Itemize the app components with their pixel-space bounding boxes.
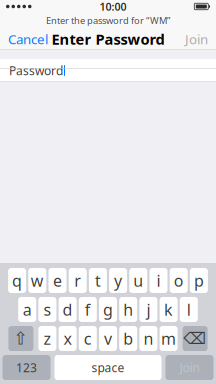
- staticText: space: [91, 359, 124, 375]
- button[interactable]: v: [99, 326, 117, 351]
- staticText: Enter the password for “WM”: [46, 14, 170, 27]
- button[interactable]: w: [28, 268, 46, 293]
- button[interactable]: f: [79, 297, 97, 322]
- button[interactable]: s: [38, 297, 56, 322]
- button[interactable]: Password: [0, 59, 216, 82]
- button[interactable]: i: [149, 268, 167, 293]
- staticText: 10:00: [99, 0, 126, 14]
- staticText: ⇧: [13, 329, 28, 348]
- button[interactable]: o: [170, 268, 188, 293]
- button[interactable]: Join: [165, 355, 213, 380]
- button[interactable]: Cancel: [0, 28, 56, 50]
- button[interactable]: b: [119, 326, 137, 351]
- staticText: Join: [185, 30, 208, 48]
- staticText: Password: [9, 62, 63, 78]
- button[interactable]: e: [48, 268, 66, 293]
- button[interactable]: x: [59, 326, 77, 351]
- staticText: q: [12, 270, 22, 291]
- staticText: Cancel: [8, 30, 48, 48]
- staticText: m: [161, 328, 176, 349]
- staticText: u: [133, 270, 143, 291]
- button[interactable]: Shift: [8, 326, 33, 351]
- staticText: a: [23, 299, 32, 320]
- button[interactable]: r: [69, 268, 87, 293]
- staticText: v: [104, 328, 112, 349]
- button[interactable]: y: [109, 268, 127, 293]
- staticText: t: [95, 270, 101, 291]
- button[interactable]: m: [160, 326, 178, 351]
- button[interactable]: t: [89, 268, 107, 293]
- staticText: f: [85, 299, 91, 320]
- staticText: r: [74, 270, 81, 291]
- staticText: z: [43, 328, 51, 349]
- button[interactable]: l: [180, 297, 198, 322]
- staticText: b: [123, 328, 133, 349]
- button[interactable]: g: [99, 297, 117, 322]
- staticText: ⌫: [184, 329, 207, 348]
- staticText: j: [146, 299, 150, 320]
- staticText: s: [43, 299, 51, 320]
- button[interactable]: Delete: [183, 326, 208, 351]
- staticText: n: [143, 328, 153, 349]
- button[interactable]: c: [79, 326, 97, 351]
- button[interactable]: u: [129, 268, 147, 293]
- button[interactable]: a: [18, 297, 36, 322]
- staticText: w: [31, 270, 44, 291]
- button[interactable]: 123: [2, 355, 50, 380]
- button[interactable]: q: [8, 268, 26, 293]
- staticText: e: [53, 270, 62, 291]
- staticText: y: [114, 270, 122, 291]
- button[interactable]: d: [59, 297, 77, 322]
- staticText: l: [187, 299, 191, 320]
- staticText: 123: [16, 359, 37, 375]
- button[interactable]: p: [190, 268, 208, 293]
- staticText: p: [194, 270, 204, 291]
- button[interactable]: h: [119, 297, 137, 322]
- button[interactable]: space: [54, 355, 161, 380]
- staticText: d: [63, 299, 73, 320]
- staticText: c: [84, 328, 92, 349]
- staticText: k: [164, 299, 173, 320]
- staticText: o: [174, 270, 184, 291]
- staticText: h: [123, 299, 133, 320]
- button[interactable]: Join: [177, 28, 216, 50]
- staticText: x: [64, 328, 72, 349]
- button[interactable]: n: [139, 326, 157, 351]
- button[interactable]: z: [38, 326, 56, 351]
- staticText: Enter Password: [51, 29, 164, 49]
- staticText: g: [103, 299, 113, 320]
- staticText: i: [156, 270, 160, 291]
- staticText: Join: [179, 359, 199, 375]
- button[interactable]: k: [160, 297, 178, 322]
- button[interactable]: j: [139, 297, 157, 322]
